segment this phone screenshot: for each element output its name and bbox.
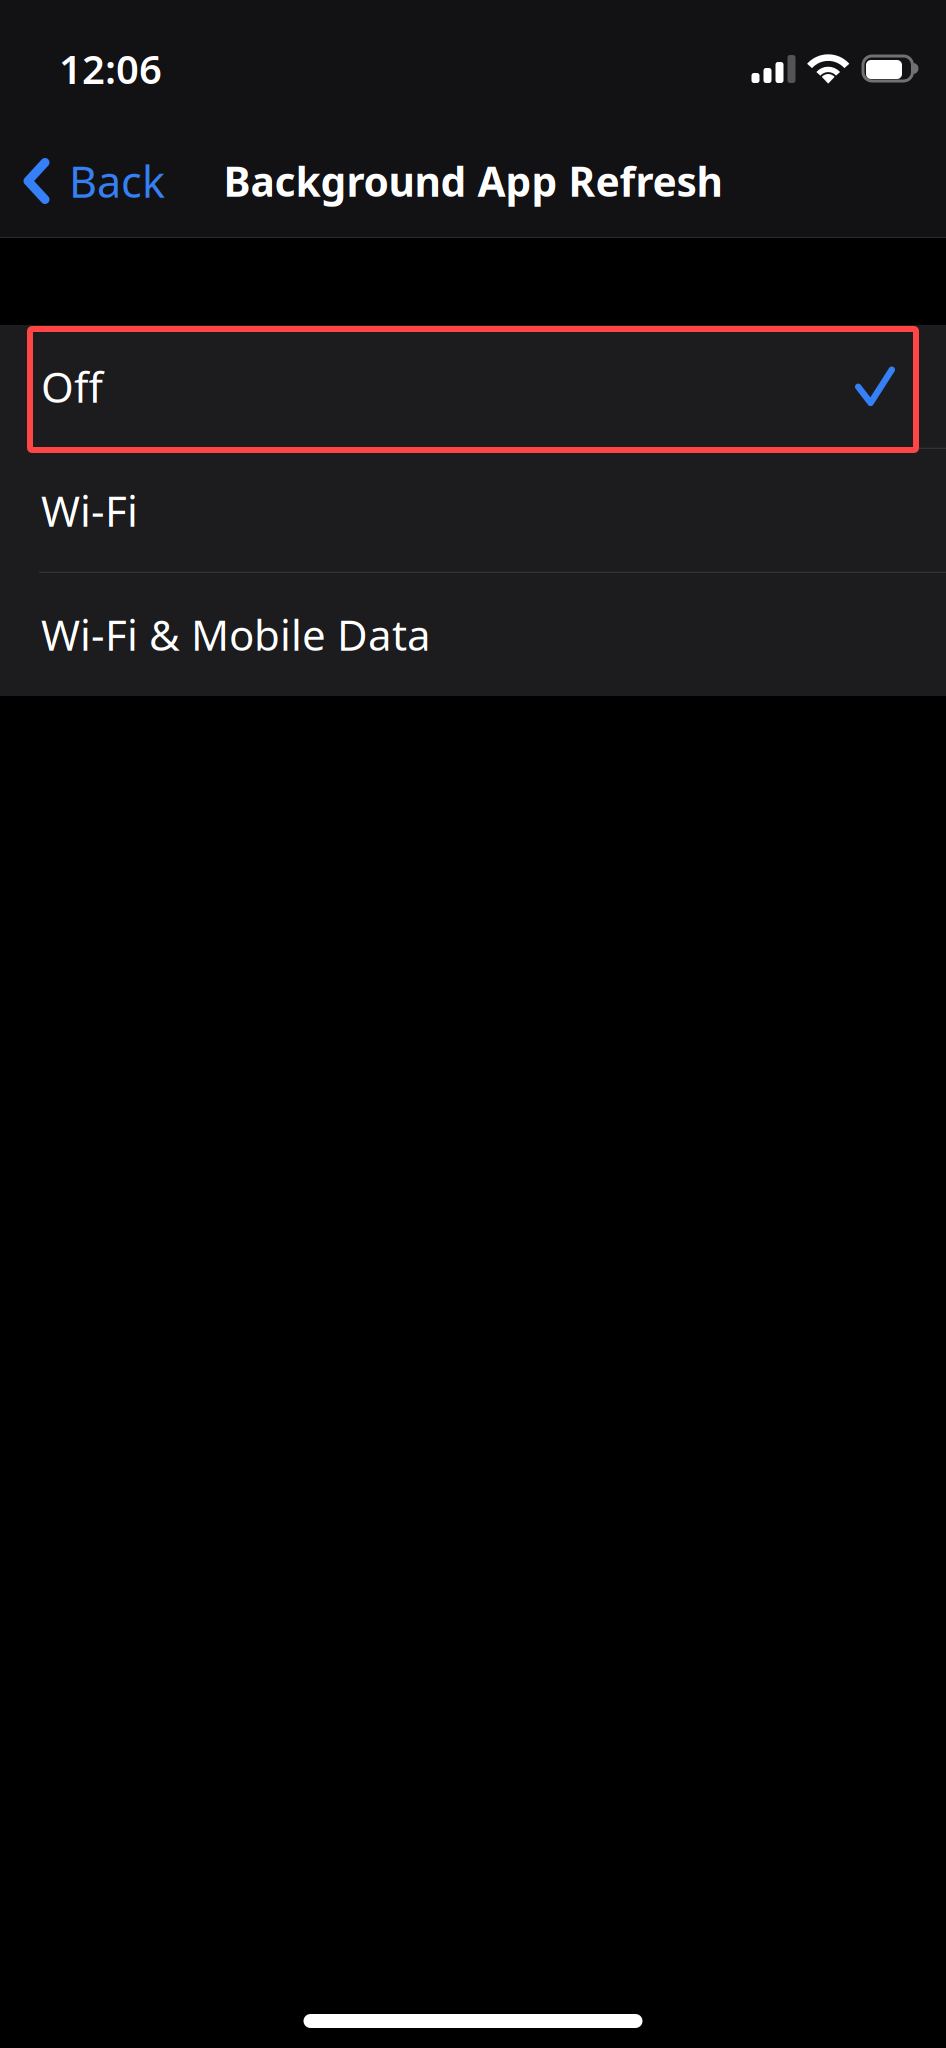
staticText: Background App Refresh [223, 153, 722, 209]
button[interactable]: Wi-Fi & Mobile Data [0, 573, 946, 696]
staticText: Wi-Fi [41, 482, 138, 539]
button[interactable]: Wi-Fi [0, 449, 946, 572]
staticText: Off [41, 358, 103, 415]
button[interactable]: Back [0, 125, 181, 237]
staticText: Back [69, 152, 165, 210]
button[interactable]: Off [0, 325, 946, 448]
staticText: 12:06 [59, 41, 162, 96]
staticText: Wi-Fi & Mobile Data [41, 606, 431, 663]
